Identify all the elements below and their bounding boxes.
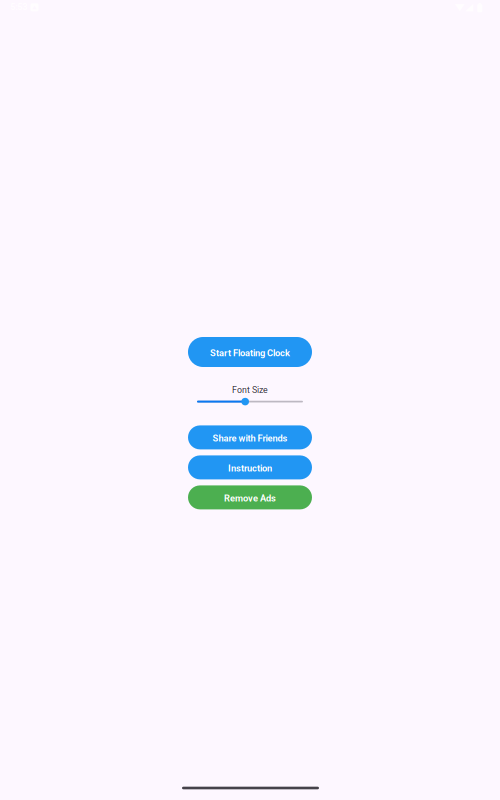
staticText: Share with Friends	[212, 433, 287, 444]
button[interactable]: Start Floating Clock	[188, 337, 312, 367]
button[interactable]: Font Size	[197, 394, 303, 408]
button[interactable]: Remove Ads	[188, 485, 312, 509]
staticText: Remove Ads	[224, 493, 276, 504]
button[interactable]: Share with Friends	[188, 425, 312, 449]
staticText: Start Floating Clock	[210, 347, 290, 358]
button[interactable]: Instruction	[188, 455, 312, 479]
staticText: Font Size	[232, 385, 268, 395]
staticText: Instruction	[228, 463, 272, 474]
